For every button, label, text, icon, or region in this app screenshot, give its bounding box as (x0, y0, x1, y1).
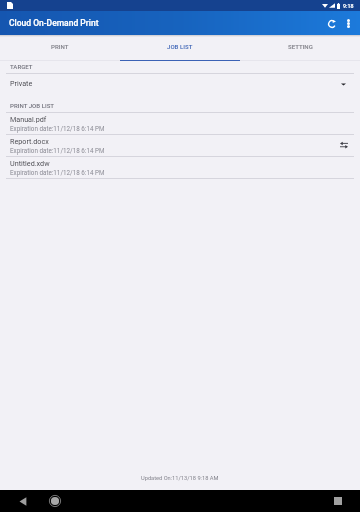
staticText: 9:18 (343, 3, 354, 9)
staticText: Report.docx (10, 137, 49, 145)
staticText: Cloud On-Demand Print (9, 18, 323, 28)
staticText: Updated On:11/13/18 9:18 AM (141, 475, 219, 482)
button[interactable]: SETTING (240, 35, 360, 61)
button[interactable]: Report.docx (0, 135, 360, 157)
other: Select target (336, 77, 350, 91)
button[interactable]: More options (340, 15, 357, 32)
staticText: Expiration date:11/12/18 6:14 PM (10, 169, 105, 176)
button[interactable]: Home (44, 490, 66, 512)
staticText: Manual.pdf (10, 115, 47, 123)
button[interactable]: Back (12, 490, 34, 512)
button[interactable]: PRINT (0, 35, 120, 61)
button[interactable]: Recent apps (327, 490, 349, 512)
button[interactable]: Manual.pdf (0, 113, 360, 135)
staticText: JOB LIST (167, 43, 193, 50)
button[interactable]: Private (0, 74, 360, 98)
button[interactable]: Untitled.xdw (0, 157, 360, 179)
button[interactable]: Refresh (323, 15, 340, 32)
staticText: TARGET (10, 63, 33, 70)
staticText: Untitled.xdw (10, 159, 50, 167)
staticText: Expiration date:11/12/18 6:14 PM (10, 125, 105, 132)
staticText: PRINT JOB LIST (10, 102, 55, 109)
button[interactable]: JOB LIST (120, 35, 240, 61)
staticText: PRINT (51, 43, 69, 50)
staticText: Expiration date:11/12/18 6:14 PM (10, 147, 105, 154)
staticText: SETTING (288, 43, 313, 50)
staticText: Private (10, 79, 336, 87)
other: Transfer job (337, 138, 351, 152)
